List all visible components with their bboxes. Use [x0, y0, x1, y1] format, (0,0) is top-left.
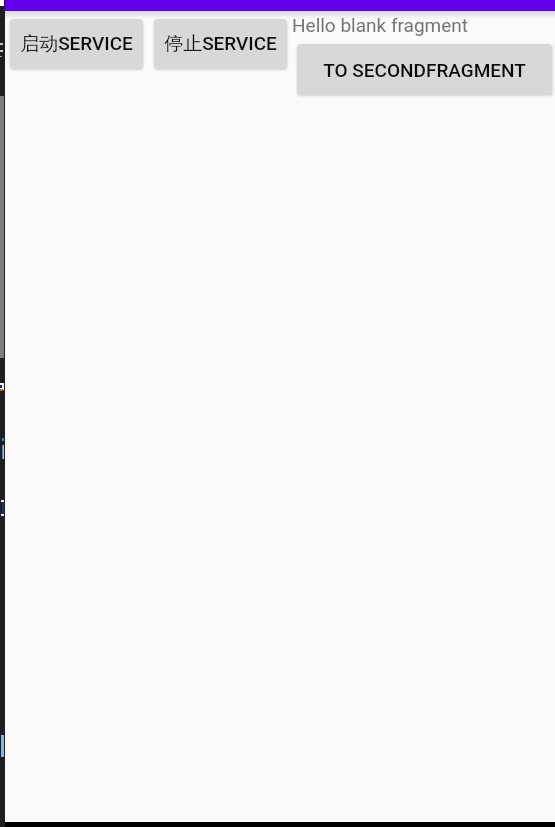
button[interactable]: 启动SERVICE	[10, 19, 143, 69]
button[interactable]: Hello blank fragment	[292, 14, 469, 36]
other: Editor	[0, 0, 5, 827]
staticText: Hello blank fragment	[292, 14, 469, 36]
staticText: TO SECONDFRAGMENT	[323, 59, 526, 81]
staticText: 启动SERVICE	[20, 32, 133, 56]
button[interactable]: 停止SERVICE	[154, 19, 287, 69]
staticText: 停止SERVICE	[164, 32, 277, 56]
button[interactable]: TO SECONDFRAGMENT	[297, 44, 552, 95]
